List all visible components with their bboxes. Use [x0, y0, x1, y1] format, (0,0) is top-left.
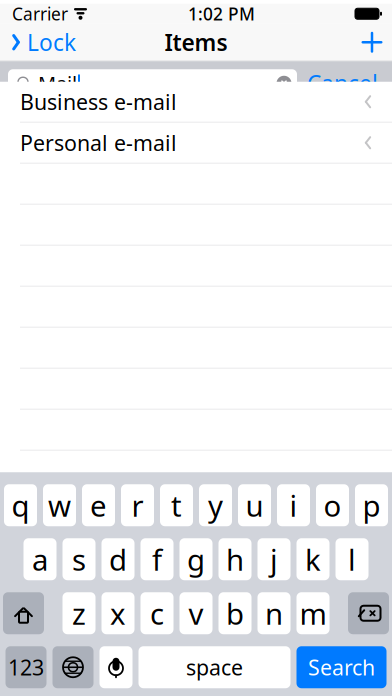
- button[interactable]: v: [179, 592, 212, 634]
- staticText: n: [265, 594, 283, 633]
- staticText: l: [348, 540, 356, 579]
- button[interactable]: n: [257, 592, 290, 634]
- staticText: x: [110, 594, 126, 633]
- staticText: space: [186, 653, 243, 681]
- button[interactable]: Personal e-mail: [0, 123, 392, 164]
- staticText: p: [362, 486, 380, 525]
- button[interactable]: p: [355, 484, 388, 526]
- staticText: 123: [8, 653, 44, 681]
- button[interactable]: q: [4, 484, 37, 526]
- button[interactable]: l: [335, 538, 368, 580]
- button[interactable]: Delete: [348, 592, 389, 634]
- staticText: j: [270, 540, 278, 579]
- staticText: m: [299, 594, 326, 633]
- staticText: u: [245, 486, 263, 525]
- staticText: g: [187, 540, 205, 579]
- button[interactable]: t: [160, 484, 193, 526]
- staticText: z: [72, 594, 86, 633]
- staticText: k: [305, 540, 321, 579]
- button[interactable]: g: [179, 538, 212, 580]
- button[interactable]: z: [62, 592, 95, 634]
- button[interactable]: j: [257, 538, 290, 580]
- staticText: a: [32, 540, 48, 579]
- button[interactable]: Next keyboard: [52, 646, 93, 688]
- staticText: v: [188, 594, 203, 633]
- button[interactable]: f: [140, 538, 173, 580]
- button[interactable]: d: [101, 538, 134, 580]
- staticText: q: [11, 486, 29, 525]
- staticText: Mail: [38, 70, 77, 97]
- button[interactable]: i: [277, 484, 310, 526]
- button[interactable]: s: [62, 538, 95, 580]
- button[interactable]: Clear text: [271, 69, 297, 97]
- button[interactable]: y: [199, 484, 232, 526]
- staticText: Search: [308, 653, 375, 681]
- staticText: h: [226, 540, 244, 579]
- staticText: o: [323, 486, 341, 525]
- staticText: c: [150, 594, 164, 633]
- button[interactable]: b: [218, 592, 251, 634]
- button[interactable]: u: [238, 484, 271, 526]
- button[interactable]: 123: [5, 646, 46, 688]
- button[interactable]: x: [101, 592, 134, 634]
- staticText: 1:02 PM: [188, 2, 255, 25]
- staticText: Items: [164, 27, 227, 57]
- staticText: r: [131, 486, 143, 525]
- button[interactable]: e: [82, 484, 115, 526]
- staticText: b: [226, 594, 244, 633]
- button[interactable]: Add: [352, 23, 392, 61]
- button[interactable]: space: [138, 646, 290, 688]
- button[interactable]: m: [296, 592, 329, 634]
- staticText: f: [152, 540, 162, 579]
- staticText: d: [109, 540, 127, 579]
- button[interactable]: k: [296, 538, 329, 580]
- button[interactable]: w: [43, 484, 76, 526]
- button[interactable]: Dictation: [99, 646, 132, 688]
- staticText: i: [289, 486, 297, 525]
- staticText: y: [208, 486, 223, 525]
- staticText: t: [171, 486, 182, 525]
- button[interactable]: Search: [296, 646, 386, 688]
- staticText: Personal e-mail: [20, 129, 177, 157]
- staticText: w: [48, 486, 71, 525]
- button[interactable]: Lock: [0, 21, 76, 63]
- button[interactable]: Cancel: [297, 65, 388, 101]
- button[interactable]: a: [23, 538, 56, 580]
- button[interactable]: Business e-mail: [0, 82, 392, 123]
- staticText: Business e-mail: [20, 88, 177, 116]
- staticText: s: [72, 540, 86, 579]
- button[interactable]: o: [316, 484, 349, 526]
- button[interactable]: r: [121, 484, 154, 526]
- staticText: Lock: [27, 27, 76, 57]
- button[interactable]: c: [140, 592, 173, 634]
- staticText: e: [90, 486, 107, 525]
- staticText: Cancel: [307, 68, 378, 98]
- staticText: Carrier: [12, 2, 68, 25]
- button[interactable]: h: [218, 538, 251, 580]
- button[interactable]: Shift: [3, 592, 44, 634]
